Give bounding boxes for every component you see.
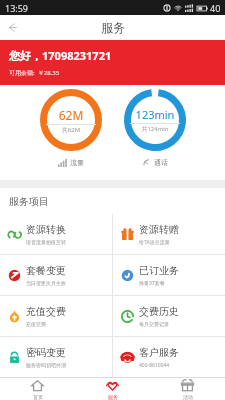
- staticText: 通话: [154, 158, 168, 167]
- button[interactable]: 套餐变更: [0, 255, 112, 295]
- staticText: 共62M: [46, 126, 96, 134]
- staticText: 已订业务: [139, 264, 179, 277]
- staticText: 服务: [101, 20, 125, 35]
- staticText: 客户服务: [139, 346, 179, 359]
- button[interactable]: 交费历史: [113, 296, 225, 336]
- staticText: 套餐变更: [26, 264, 66, 277]
- button[interactable]: 客户服务: [113, 337, 225, 377]
- staticText: 400-8610044: [139, 362, 170, 369]
- staticText: 给TA送点流量: [139, 239, 170, 246]
- staticText: 服务项目: [9, 195, 49, 208]
- button[interactable]: 密码变更: [0, 337, 112, 377]
- staticText: 每月交费记录: [139, 321, 169, 327]
- button[interactable]: 资源转赠: [113, 214, 225, 254]
- staticText: 可用余额: ￥28.35: [9, 69, 60, 77]
- button[interactable]: 已订业务: [113, 255, 225, 295]
- staticText: 服务: [108, 394, 118, 400]
- staticText: 资源转换: [26, 223, 66, 236]
- staticText: 您好，17098231721: [9, 48, 112, 63]
- button[interactable]: 活动: [150, 378, 225, 400]
- staticText: 首页: [33, 394, 43, 400]
- staticText: 活动: [183, 394, 193, 400]
- staticText: 海量37套餐: [139, 280, 165, 287]
- button[interactable]: 服务: [75, 378, 150, 400]
- button[interactable]: 首页: [0, 378, 75, 400]
- staticText: 40: [210, 2, 221, 14]
- staticText: 资源转赠: [139, 223, 179, 236]
- staticText: 语音流量相值互转: [26, 239, 66, 245]
- staticText: 流量: [70, 158, 84, 167]
- staticText: 当日变更次月生效: [26, 280, 66, 286]
- button[interactable]: 充值交费: [0, 296, 112, 336]
- button[interactable]: 资源转换: [0, 214, 112, 254]
- staticText: 密码变更: [26, 346, 66, 359]
- staticText: 13:59: [5, 2, 29, 14]
- staticText: 交费历史: [139, 305, 179, 318]
- button[interactable]: Back: [0, 15, 25, 40]
- staticText: 充值交费: [26, 321, 46, 327]
- staticText: 123min: [130, 107, 180, 122]
- staticText: 服务密码切吧外泄: [26, 362, 66, 368]
- staticText: 共124min: [130, 125, 180, 133]
- staticText: 62M: [46, 107, 96, 123]
- staticText: 充值交费: [26, 305, 66, 318]
